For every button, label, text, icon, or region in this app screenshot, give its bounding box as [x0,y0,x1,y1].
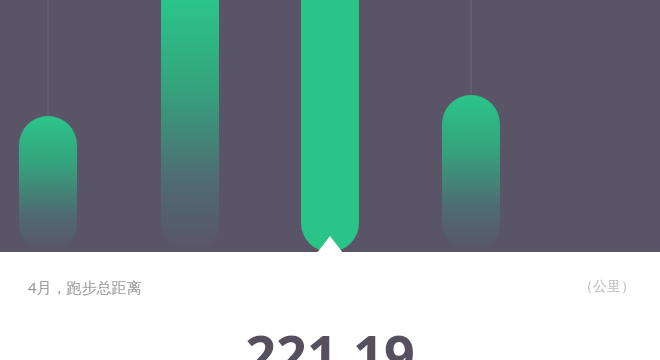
staticText: （公里） [579,278,635,296]
staticText: 4月，跑步总距离 [28,277,142,297]
button[interactable]: 4月，跑步总距离 [0,252,660,297]
staticText: 221.19 [245,317,415,360]
button[interactable]: Monthly running distance chart [0,0,660,252]
